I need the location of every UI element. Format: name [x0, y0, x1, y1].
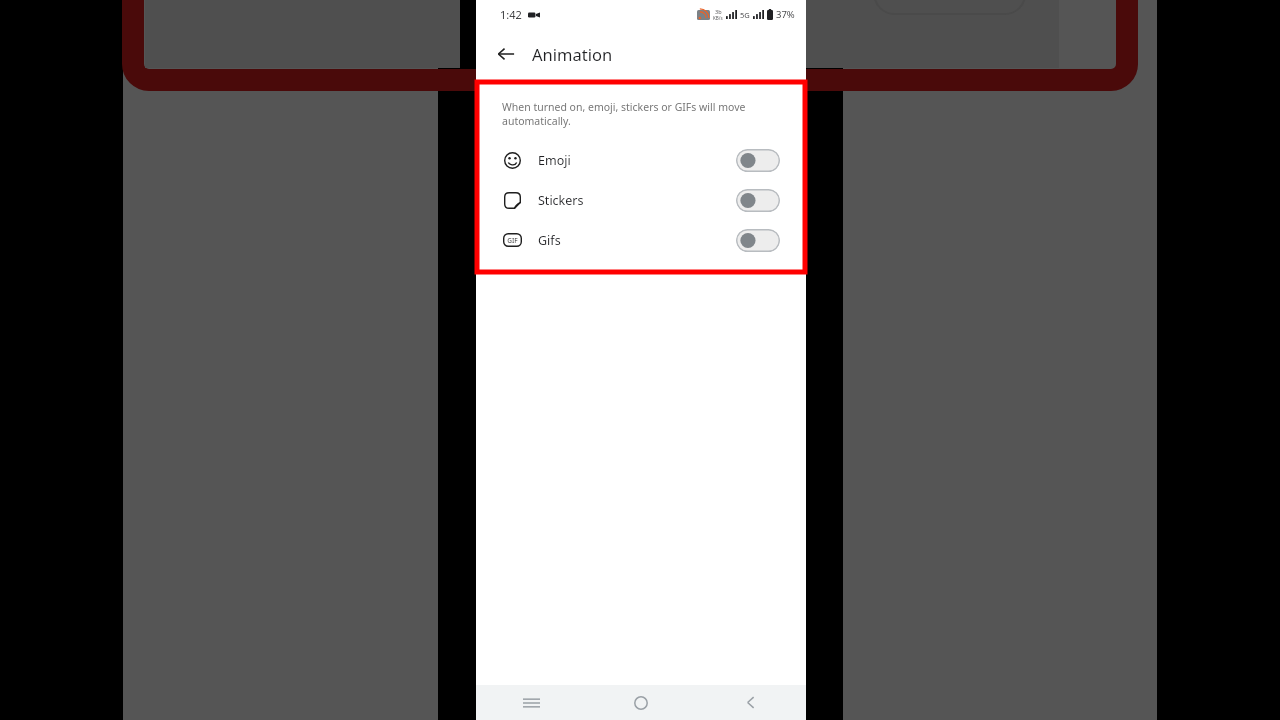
button[interactable]: Emoji [482, 140, 800, 180]
staticText: Gifs [538, 232, 561, 249]
button[interactable]: Back [696, 685, 806, 720]
staticText: 1:42 [500, 7, 522, 22]
staticText: When turned on, emoji, stickers or GIFs … [502, 100, 774, 128]
button[interactable]: Toggle [736, 229, 780, 252]
staticText: 5G [740, 10, 750, 20]
button[interactable]: Back [488, 36, 524, 72]
button[interactable]: Toggle [736, 149, 780, 172]
staticText: Animation [532, 43, 613, 65]
button[interactable]: GIF [482, 220, 800, 260]
staticText: KB/s [713, 15, 723, 21]
staticText: GIF [507, 236, 518, 245]
button[interactable]: Recent apps [476, 685, 586, 720]
button[interactable]: Stickers [482, 180, 800, 220]
staticText: Stickers [538, 192, 584, 209]
button[interactable]: Home [586, 685, 696, 720]
staticText: 3b [715, 8, 722, 15]
staticText: 37% [776, 8, 795, 21]
button[interactable]: Toggle [736, 189, 780, 212]
staticText: Emoji [538, 152, 571, 169]
